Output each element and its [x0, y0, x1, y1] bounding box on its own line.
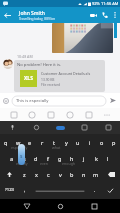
staticText: especially	[11, 145, 28, 150]
button[interactable]: Enter	[101, 182, 120, 198]
staticText: even	[40, 161, 49, 166]
staticText: This is especially	[16, 98, 49, 104]
staticText: Customer Account Details.xls	[41, 71, 91, 76]
staticText: l	[107, 155, 109, 162]
button[interactable]: q	[0, 134, 12, 150]
button[interactable]: i	[84, 134, 96, 150]
staticText: No problem! Here it is.	[17, 62, 62, 68]
button[interactable]: Home	[53, 199, 67, 213]
staticText: y	[65, 139, 68, 146]
button[interactable]: ?123	[0, 182, 19, 198]
button[interactable]: r	[36, 134, 48, 150]
button[interactable]: Emoji	[64, 109, 75, 120]
staticText: ?123	[5, 187, 15, 193]
button[interactable]: Settings	[24, 121, 48, 134]
button[interactable]: d	[30, 150, 42, 166]
button[interactable]: Language	[72, 121, 96, 134]
button[interactable]: k	[90, 150, 102, 166]
button[interactable]: o	[96, 134, 108, 150]
staticText: g	[58, 155, 62, 162]
button[interactable]: Comma	[19, 182, 31, 198]
staticText: p	[112, 139, 116, 146]
button[interactable]: Emoji	[0, 93, 12, 108]
button[interactable]: h	[66, 150, 78, 166]
button[interactable]: This is especially	[12, 96, 106, 106]
button[interactable]: Clipboard	[8, 109, 19, 120]
staticText: e	[28, 139, 32, 146]
button[interactable]: c	[42, 166, 54, 182]
button[interactable]: x	[30, 166, 42, 182]
button[interactable]: Space	[31, 182, 89, 198]
staticText: x	[35, 171, 38, 178]
button[interactable]: Back	[20, 199, 34, 213]
staticText: what	[52, 145, 61, 150]
button[interactable]: Document	[83, 109, 94, 120]
button[interactable]: v	[54, 166, 66, 182]
staticText: 92%	[92, 1, 100, 6]
staticText: enough	[62, 161, 76, 166]
button[interactable]: a	[6, 150, 18, 166]
staticText: XLS	[24, 75, 33, 82]
button[interactable]: Video call	[87, 7, 99, 23]
button[interactable]: l	[102, 150, 114, 166]
staticText: 10:48 AM	[17, 54, 33, 59]
button[interactable]: s	[18, 150, 30, 166]
staticText: Travelling today, 889 km	[19, 17, 56, 21]
staticText: w	[16, 139, 21, 146]
button[interactable]: More	[96, 121, 120, 134]
staticText: i	[89, 139, 91, 146]
button[interactable]: Period	[89, 182, 101, 198]
button[interactable]: Back	[0, 7, 14, 23]
staticText: exactly	[16, 161, 28, 166]
button[interactable]: Shift	[0, 166, 18, 182]
button[interactable]: f	[42, 150, 54, 166]
button[interactable]: Photo message	[52, 23, 113, 53]
button[interactable]: e	[24, 134, 36, 150]
staticText: v	[59, 171, 62, 178]
staticText: r	[41, 139, 44, 146]
staticText: j	[83, 155, 85, 162]
button[interactable]: g	[54, 150, 66, 166]
button[interactable]: m	[90, 166, 102, 182]
staticText: k	[95, 155, 98, 162]
staticText: m	[93, 171, 99, 178]
button[interactable]: b	[66, 166, 78, 182]
staticText: z	[23, 171, 26, 178]
button[interactable]: u	[72, 134, 84, 150]
staticText: f	[47, 155, 49, 162]
button[interactable]: j	[78, 150, 90, 166]
button[interactable]: Recent apps	[87, 199, 101, 213]
staticText: h	[70, 155, 74, 162]
staticText: u	[76, 139, 80, 146]
button[interactable]: Sticker	[45, 109, 56, 120]
button[interactable]: z	[18, 166, 30, 182]
button[interactable]: Call	[99, 7, 110, 23]
staticText: c	[47, 171, 50, 178]
button[interactable]: Theme	[48, 121, 72, 134]
staticText: 11:56 AM	[101, 1, 119, 6]
button[interactable]: More	[101, 109, 112, 120]
button[interactable]: n	[78, 166, 90, 182]
staticText: s	[23, 155, 26, 162]
button[interactable]: y	[60, 134, 72, 150]
button[interactable]: Send	[106, 93, 120, 108]
staticText: .	[94, 187, 96, 194]
staticText: a	[10, 155, 14, 162]
button[interactable]: No problem! Here it is.	[14, 60, 105, 92]
button[interactable]: More options	[110, 7, 120, 23]
staticText: John Smith	[19, 10, 45, 17]
button[interactable]: Voice input	[0, 121, 24, 134]
staticText: ,	[24, 187, 26, 194]
staticText: n	[82, 171, 86, 178]
staticText: t	[53, 139, 55, 146]
button[interactable]: GIF	[26, 109, 37, 120]
button[interactable]: t	[48, 134, 60, 150]
button[interactable]: p	[108, 134, 120, 150]
staticText: q	[4, 139, 8, 146]
staticText: 13.90 KB	[41, 77, 55, 81]
button[interactable]: Backspace	[102, 166, 120, 182]
staticText: b	[70, 171, 74, 178]
staticText: d	[34, 155, 38, 162]
button[interactable]: w	[12, 134, 24, 150]
staticText: o	[100, 139, 104, 146]
